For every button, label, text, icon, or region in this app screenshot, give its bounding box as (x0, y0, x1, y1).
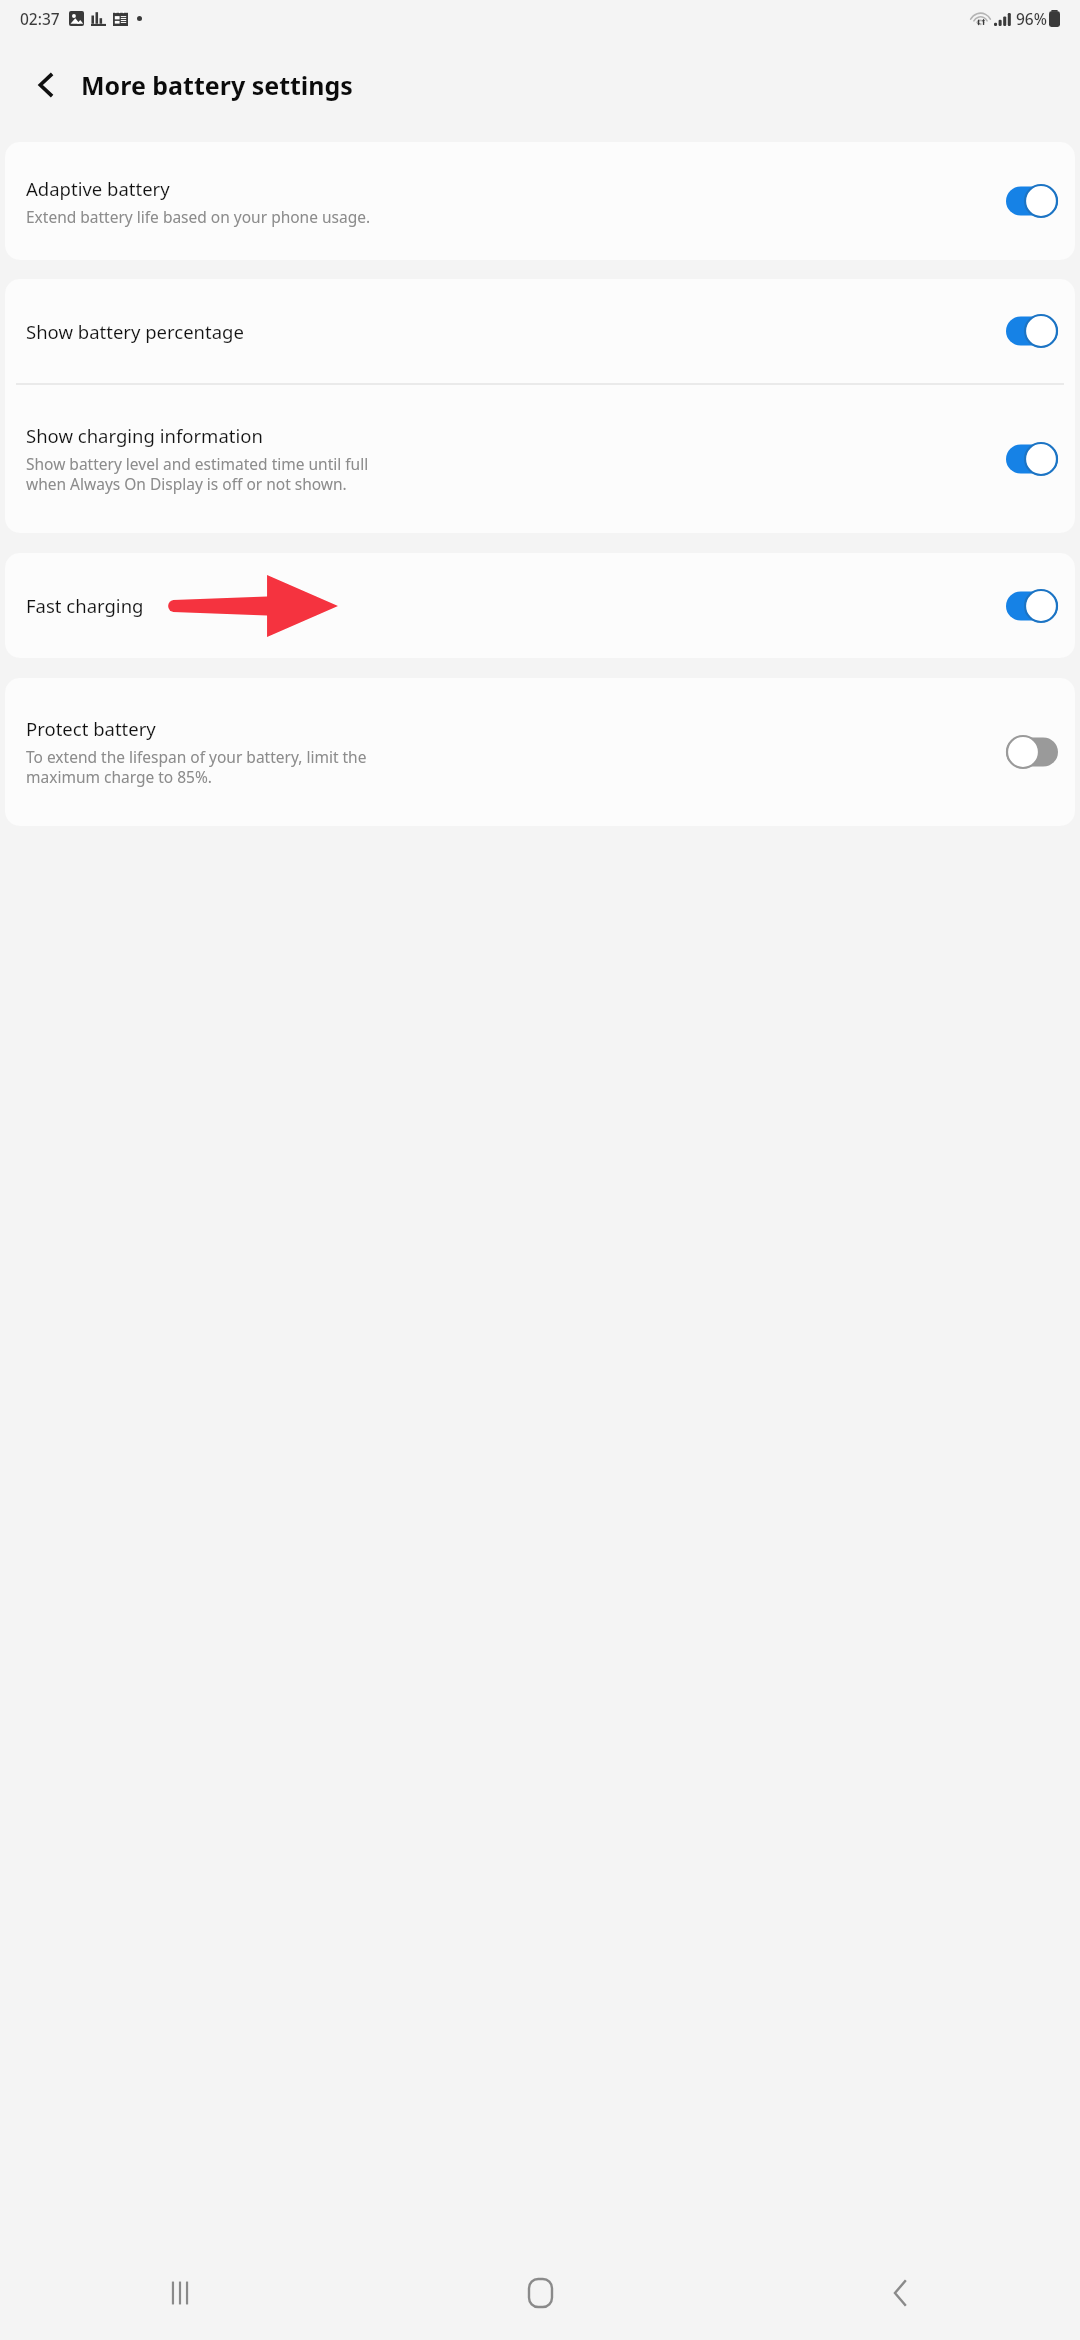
button[interactable]: Protect battery (5, 678, 1075, 826)
staticText: Adaptive battery (26, 176, 170, 201)
button[interactable]: Back (720, 2245, 1080, 2340)
button[interactable]: Fast charging (5, 553, 1075, 658)
staticText: Show battery level and estimated time un… (26, 453, 369, 495)
button[interactable]: Back (20, 59, 72, 111)
button[interactable]: Show charging information (5, 385, 1075, 533)
button[interactable]: Toggle on (1006, 589, 1058, 623)
button[interactable]: Home (360, 2245, 720, 2340)
button[interactable]: Recent apps (0, 2245, 360, 2340)
staticText: Protect battery (26, 716, 156, 741)
staticText: Fast charging (26, 593, 144, 618)
staticText: More battery settings (81, 68, 353, 102)
button[interactable]: Toggle on (1006, 442, 1058, 476)
button[interactable]: Adaptive battery (5, 142, 1075, 260)
staticText: 96% (1016, 8, 1047, 29)
button[interactable]: Toggle off (1006, 735, 1058, 769)
button[interactable]: Toggle on (1006, 184, 1058, 218)
staticText: 02:37 (20, 8, 60, 29)
staticText: Show battery percentage (26, 319, 244, 344)
button[interactable]: Show battery percentage (5, 279, 1075, 383)
staticText: To extend the lifespan of your battery, … (26, 746, 367, 788)
staticText: Extend battery life based on your phone … (26, 206, 371, 227)
staticText: Show charging information (26, 423, 263, 448)
button[interactable]: Toggle on (1006, 314, 1058, 348)
